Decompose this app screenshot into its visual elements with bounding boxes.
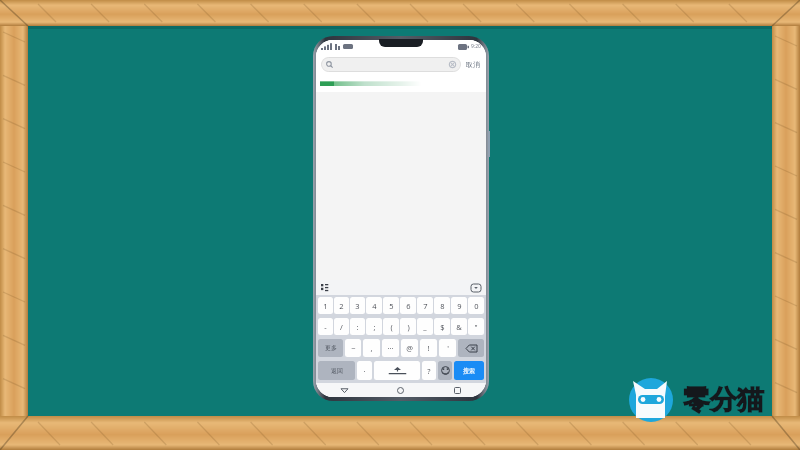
staticText: 6 — [406, 301, 411, 311]
staticText: 搜索 — [463, 367, 475, 375]
staticText: " — [474, 322, 478, 332]
staticText: - — [324, 322, 327, 332]
staticText: : — [356, 322, 359, 332]
button[interactable]: 2 — [334, 297, 349, 314]
button[interactable]: Search — [321, 57, 461, 72]
staticText: , — [370, 343, 373, 353]
other: Search — [326, 61, 333, 68]
staticText: 3 — [355, 301, 360, 311]
button[interactable]: 1 — [318, 297, 333, 314]
staticText: ) — [407, 322, 410, 332]
button[interactable]: & — [451, 318, 467, 335]
button[interactable]: ? — [422, 361, 436, 380]
staticText: ··· — [387, 343, 394, 353]
button[interactable]: Emoji — [438, 361, 452, 380]
button[interactable]: : — [350, 318, 365, 335]
button[interactable]: Recents — [429, 383, 486, 397]
button[interactable]: _ — [417, 318, 433, 335]
staticText: · — [363, 366, 366, 376]
staticText: $ — [440, 322, 445, 332]
button[interactable]: ; — [366, 318, 382, 335]
staticText: ~ — [351, 343, 356, 353]
staticText: 取消 — [466, 60, 480, 69]
button[interactable]: - — [318, 318, 333, 335]
staticText: 更多 — [325, 344, 337, 352]
button[interactable]: ) — [400, 318, 416, 335]
button[interactable]: 7 — [417, 297, 433, 314]
staticText: _ — [423, 322, 427, 332]
staticText: 5 — [389, 301, 394, 311]
staticText: ? — [427, 366, 431, 376]
button[interactable]: 取消 — [465, 60, 481, 69]
button[interactable]: Home — [372, 383, 429, 397]
staticText: 0 — [474, 301, 479, 311]
button[interactable]: 返回 — [318, 361, 355, 380]
button[interactable]: ! — [420, 339, 437, 357]
button[interactable]: @ — [401, 339, 418, 357]
button[interactable]: 9 — [451, 297, 467, 314]
staticText: 零分猫 — [683, 383, 764, 417]
button[interactable]: ( — [383, 318, 399, 335]
button[interactable]: Hide keyboard — [471, 284, 481, 292]
button[interactable]: 0 — [468, 297, 484, 314]
button[interactable]: 4 — [366, 297, 382, 314]
staticText: 9:20 — [471, 43, 481, 50]
staticText: 2 — [339, 301, 344, 311]
button[interactable]: 6 — [400, 297, 416, 314]
staticText: 返回 — [331, 367, 343, 375]
staticText: ; — [373, 322, 376, 332]
staticText: 4 — [372, 301, 377, 311]
button[interactable]: ··· — [382, 339, 399, 357]
button[interactable]: ~ — [345, 339, 361, 357]
button[interactable]: " — [468, 318, 484, 335]
staticText: ! — [427, 343, 430, 353]
button[interactable]: 更多 — [318, 339, 343, 357]
button[interactable]: Keyboard menu — [321, 284, 329, 292]
button[interactable] — [316, 75, 486, 92]
staticText: 9 — [457, 301, 462, 311]
button[interactable]: / — [334, 318, 349, 335]
staticText: 1 — [323, 301, 328, 311]
button[interactable]: 搜索 — [454, 361, 484, 380]
staticText: 7 — [423, 301, 428, 311]
button[interactable]: ' — [439, 339, 456, 357]
staticText: / — [340, 322, 343, 332]
button[interactable]: 8 — [434, 297, 450, 314]
staticText: 8 — [440, 301, 445, 311]
button[interactable]: Space — [374, 361, 420, 380]
staticText: ' — [447, 343, 449, 353]
button[interactable]: Clear — [449, 61, 456, 68]
button[interactable]: 3 — [350, 297, 365, 314]
button[interactable]: · — [357, 361, 372, 380]
button[interactable]: Back — [316, 383, 372, 397]
staticText: ( — [390, 322, 393, 332]
staticText: & — [456, 322, 462, 332]
button[interactable]: 5 — [383, 297, 399, 314]
button[interactable]: $ — [434, 318, 450, 335]
staticText: @ — [406, 343, 413, 353]
button[interactable]: , — [363, 339, 380, 357]
button[interactable]: Delete — [458, 339, 484, 357]
